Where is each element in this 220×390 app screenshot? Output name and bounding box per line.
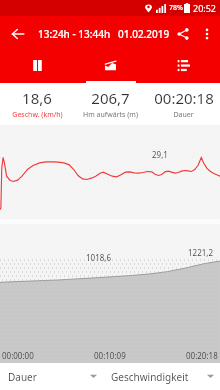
button[interactable]: Details [147, 52, 220, 83]
staticText: 00:20:18 [186, 350, 218, 361]
staticText: 78% [169, 3, 183, 13]
staticText: 206,7 [91, 88, 130, 108]
staticText: Hm aufwärts (m) [83, 110, 138, 120]
button[interactable]: Geschwindigkeit [103, 363, 220, 390]
button[interactable]: Map [0, 52, 74, 83]
button[interactable]: 18,6 [0, 83, 74, 125]
staticText: 1221,2 [188, 247, 214, 258]
staticText: Geschwindigkeit [111, 370, 189, 384]
staticText: 01.02.2019 [118, 27, 170, 41]
staticText: 18,6 [22, 88, 52, 108]
staticText: 00:10:09 [94, 350, 126, 361]
button[interactable]: Dauer [0, 363, 103, 390]
staticText: 13:24h - 13:44h [38, 27, 111, 41]
staticText: Dauer [8, 370, 37, 384]
button[interactable]: Share [170, 21, 196, 47]
button[interactable]: 206,7 [74, 83, 147, 125]
staticText: Dauer [173, 110, 194, 120]
button[interactable]: 00:20:18 [147, 83, 220, 125]
staticText: 29,1 [152, 149, 168, 160]
staticText: 00:00:00 [2, 350, 34, 361]
staticText: 00:20:18 [154, 88, 214, 108]
staticText: Geschw. (km/h) [12, 110, 63, 120]
staticText: 20:52 [193, 2, 217, 14]
button[interactable]: More options [196, 23, 218, 45]
button[interactable]: Back [4, 20, 32, 48]
staticText: 1018,6 [86, 252, 112, 263]
button[interactable]: Charts [74, 52, 147, 83]
